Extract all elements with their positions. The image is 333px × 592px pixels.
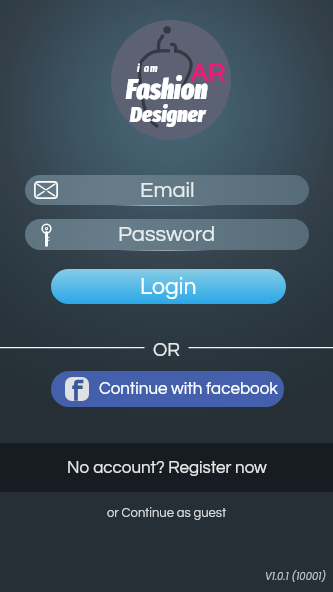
staticText: V1.0.1 (10001) xyxy=(265,569,326,583)
staticText: or Continue as guest xyxy=(107,506,227,519)
button[interactable]: Login xyxy=(51,269,286,304)
staticText: No account? Register now xyxy=(67,459,267,477)
staticText: Email xyxy=(140,179,195,202)
staticText: Password xyxy=(118,223,216,246)
other: Password xyxy=(41,223,52,246)
staticText: Fashion xyxy=(126,73,208,107)
staticText: AR xyxy=(191,60,226,87)
staticText: Login xyxy=(140,275,197,299)
staticText: Continue with facebook xyxy=(99,380,278,398)
button[interactable]: Password xyxy=(25,219,309,250)
button[interactable]: No account? Register now xyxy=(0,443,333,492)
button[interactable]: Continue with facebook xyxy=(51,371,284,407)
staticText: Designer xyxy=(130,101,206,127)
staticText: i am xyxy=(137,62,159,75)
button[interactable]: Email xyxy=(25,175,309,205)
other: Email xyxy=(34,181,58,199)
button[interactable]: or Continue as guest xyxy=(0,498,333,526)
staticText: OR xyxy=(153,340,180,358)
